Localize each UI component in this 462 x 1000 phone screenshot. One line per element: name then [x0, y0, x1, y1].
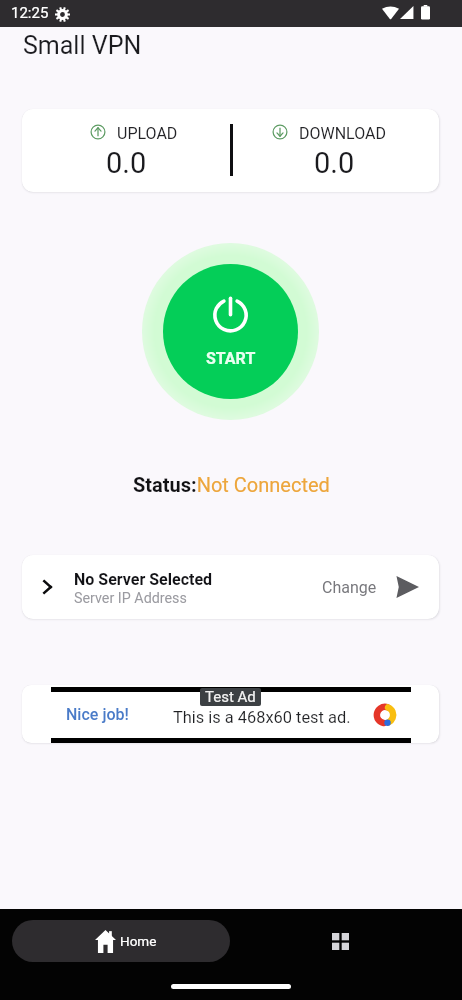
button[interactable]: START [142, 243, 319, 420]
staticText: Change [322, 578, 377, 597]
staticText: START [206, 349, 256, 368]
staticText: Nice job! [66, 705, 129, 724]
staticText: Small VPN [23, 31, 142, 60]
button[interactable]: Apps [319, 920, 361, 962]
staticText: 0.0 [106, 146, 147, 180]
staticText: Server IP Address [74, 590, 187, 607]
staticText: UPLOAD [117, 124, 178, 143]
button[interactable]: Home [12, 920, 230, 962]
staticText: Home [120, 933, 157, 949]
staticText: Test Ad [205, 688, 256, 706]
staticText: 0.0 [314, 146, 355, 180]
staticText: 12:25 [11, 4, 49, 22]
staticText: Status:Not Connected [133, 473, 330, 496]
button[interactable]: Nice job! [22, 685, 439, 743]
staticText: This is a 468x60 test ad. [173, 708, 351, 727]
staticText: No Server Selected [74, 570, 213, 589]
staticText: DOWNLOAD [299, 124, 387, 143]
button[interactable]: No Server Selected [22, 555, 439, 619]
